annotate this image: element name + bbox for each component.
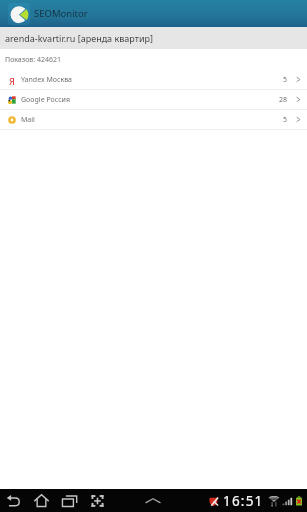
button[interactable]: Recent apps — [62, 493, 77, 508]
button[interactable]: Back — [6, 493, 21, 508]
staticText: 16:51 — [223, 492, 264, 510]
button[interactable]: Home — [34, 493, 49, 508]
button[interactable]: Show notifications — [145, 493, 161, 509]
button[interactable]: arenda-kvartir.ru [аренда квартир] — [0, 27, 307, 49]
staticText: Yandex Москва — [21, 75, 73, 85]
staticText: Показов: 424621 — [5, 55, 61, 65]
staticText: 5 — [283, 115, 288, 125]
staticText: 5 — [283, 75, 288, 85]
button[interactable]: SEOMonitor, up — [8, 3, 30, 25]
button[interactable]: Screenshot — [90, 493, 105, 508]
staticText: Google Россия — [21, 95, 70, 105]
staticText: Mail — [21, 115, 35, 125]
button[interactable]: Mail — [0, 110, 307, 129]
button[interactable]: Я — [0, 70, 307, 89]
staticText: SEOMonitor — [34, 7, 88, 20]
staticText: 28 — [279, 95, 288, 105]
button[interactable]: Google Россия — [0, 90, 307, 109]
staticText: arenda-kvartir.ru [аренда квартир] — [5, 32, 153, 44]
staticText: Я — [9, 75, 15, 85]
